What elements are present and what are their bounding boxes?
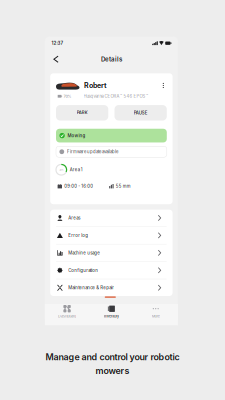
button[interactable]: Inventory	[89, 304, 133, 325]
staticText: Mowing	[68, 133, 86, 138]
staticText: Areas	[68, 215, 80, 220]
staticText: Details	[101, 55, 122, 63]
staticText: PARK	[77, 110, 88, 115]
staticText: Dashboard	[58, 314, 76, 318]
button[interactable]: Back	[50, 52, 62, 66]
button[interactable]: More options	[160, 80, 167, 90]
staticText: PAUSE	[134, 110, 148, 115]
staticText: 55 mm	[116, 184, 131, 189]
staticText: Robert	[84, 81, 107, 90]
button[interactable]: Configuration	[50, 262, 173, 279]
staticText: Area 1	[70, 167, 83, 172]
staticText: mowers	[95, 365, 129, 376]
staticText: Configuration	[68, 268, 98, 273]
button[interactable]: Error log	[50, 227, 173, 244]
button[interactable]: Machine usage	[50, 244, 173, 261]
button[interactable]: More	[134, 304, 178, 325]
staticText: 09:00 - 16:00	[64, 184, 93, 189]
button[interactable]: PAUSE	[114, 105, 167, 120]
staticText: Error log	[68, 233, 88, 238]
button[interactable]: Maintenance & Repair	[50, 279, 173, 296]
staticText: 70%	[63, 94, 71, 99]
staticText: More	[152, 314, 160, 318]
staticText: 12:37	[51, 40, 63, 46]
button[interactable]: Dashboard	[45, 304, 89, 325]
button[interactable]: Areas	[50, 209, 173, 226]
staticText: Manage and control your robotic	[45, 351, 179, 362]
staticText: Firmware update available	[67, 149, 118, 154]
staticText: Machine usage	[68, 250, 100, 255]
staticText: Inventory	[104, 314, 119, 318]
staticText: Husqvarna CEORA™ 546 EPOS™	[83, 94, 148, 99]
button[interactable]: PARK	[56, 105, 108, 120]
staticText: Maintenance & Repair	[68, 285, 114, 290]
staticText: 32%	[59, 168, 63, 171]
